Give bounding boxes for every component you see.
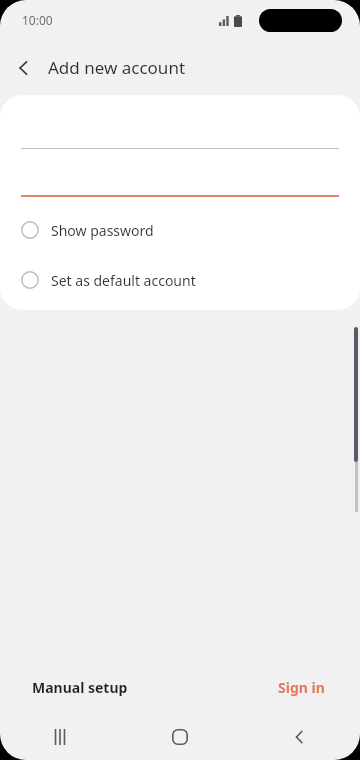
button[interactable]: Home — [120, 714, 240, 760]
button[interactable]: Manual setup — [22, 670, 138, 705]
staticText: 10:00 — [22, 12, 53, 28]
staticText: Manual setup — [32, 678, 128, 697]
staticText: Sign in — [278, 678, 325, 697]
button[interactable]: Set as default account — [0, 263, 360, 297]
staticText: Show password — [51, 221, 154, 240]
button[interactable]: Recent apps — [0, 714, 120, 760]
button[interactable]: Show password — [0, 213, 360, 247]
staticText: Add new account — [48, 56, 186, 79]
button[interactable]: Back — [0, 44, 48, 92]
staticText: Set as default account — [51, 271, 196, 290]
button[interactable]: Sign in — [268, 670, 335, 705]
button[interactable]: Back — [240, 714, 360, 760]
